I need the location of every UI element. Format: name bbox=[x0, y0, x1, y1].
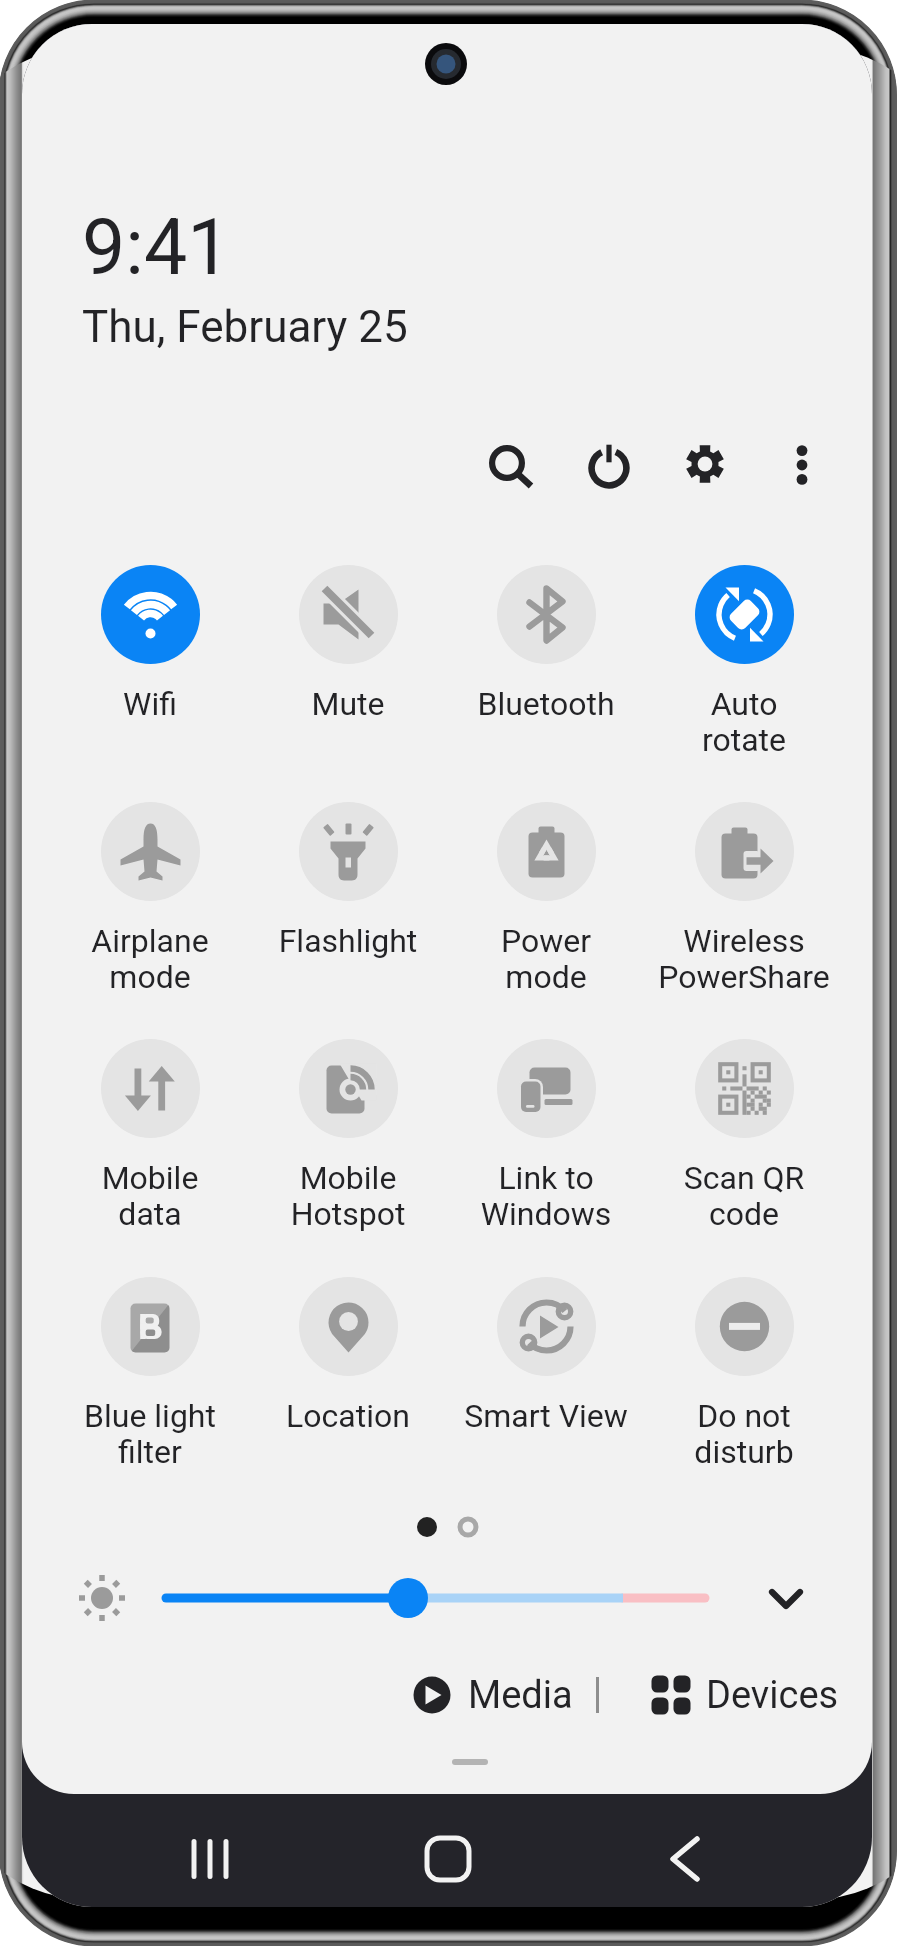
button[interactable]: Settings bbox=[663, 422, 747, 506]
button[interactable]: Do not disturb bbox=[645, 1277, 843, 1470]
button[interactable]: Devices bbox=[648, 1665, 839, 1725]
staticText: Bluetooth bbox=[447, 685, 645, 723]
staticText: Do not disturb bbox=[645, 1397, 843, 1470]
staticText: Scan QR code bbox=[645, 1159, 843, 1232]
staticText: Smart View bbox=[447, 1397, 645, 1435]
staticText: Devices bbox=[706, 1673, 839, 1718]
button[interactable]: Brightness bbox=[70, 1566, 134, 1630]
button[interactable]: Airplane mode bbox=[51, 802, 249, 995]
button[interactable]: Power bbox=[567, 422, 651, 506]
staticText: Location bbox=[249, 1397, 447, 1435]
staticText: Flashlight bbox=[249, 922, 447, 960]
button[interactable]: Brightness slider bbox=[162, 1568, 709, 1628]
button[interactable]: Auto rotate bbox=[645, 565, 843, 758]
button[interactable]: Blue light filter bbox=[51, 1277, 249, 1470]
button[interactable]: Wifi bbox=[51, 565, 249, 723]
button[interactable]: Back bbox=[645, 1819, 725, 1899]
staticText: Wireless PowerShare bbox=[645, 922, 843, 995]
button[interactable]: Wireless PowerShare bbox=[645, 802, 843, 995]
staticText: Mobile data bbox=[51, 1159, 249, 1232]
staticText: Thu, February 25 bbox=[82, 301, 408, 353]
button[interactable]: Power mode bbox=[447, 802, 645, 995]
staticText: Media bbox=[468, 1673, 573, 1718]
button[interactable]: Bluetooth bbox=[447, 565, 645, 723]
button[interactable]: Home bbox=[408, 1819, 488, 1899]
button[interactable]: Mobile data bbox=[51, 1039, 249, 1232]
button[interactable]: Search bbox=[467, 422, 551, 506]
button[interactable]: Expand bbox=[756, 1568, 816, 1628]
button[interactable]: Scan QR code bbox=[645, 1039, 843, 1232]
button[interactable]: Flashlight bbox=[249, 802, 447, 960]
staticText: Blue light filter bbox=[51, 1397, 249, 1470]
button[interactable]: More options bbox=[760, 422, 844, 506]
button[interactable]: Mobile Hotspot bbox=[249, 1039, 447, 1232]
button[interactable]: Location bbox=[249, 1277, 447, 1435]
staticText: Mute bbox=[249, 685, 447, 723]
staticText: Link to Windows bbox=[447, 1159, 645, 1232]
staticText: Auto rotate bbox=[645, 685, 843, 758]
button[interactable]: Media bbox=[408, 1665, 573, 1725]
button[interactable]: Link to Windows bbox=[447, 1039, 645, 1232]
staticText: Wifi bbox=[51, 685, 249, 723]
button[interactable]: Recents bbox=[170, 1819, 250, 1899]
staticText: Mobile Hotspot bbox=[249, 1159, 447, 1232]
staticText: Power mode bbox=[447, 922, 645, 995]
button[interactable]: Smart View bbox=[447, 1277, 645, 1435]
staticText: 9:41 bbox=[82, 203, 231, 293]
staticText: Airplane mode bbox=[51, 922, 249, 995]
button[interactable]: Mute bbox=[249, 565, 447, 723]
